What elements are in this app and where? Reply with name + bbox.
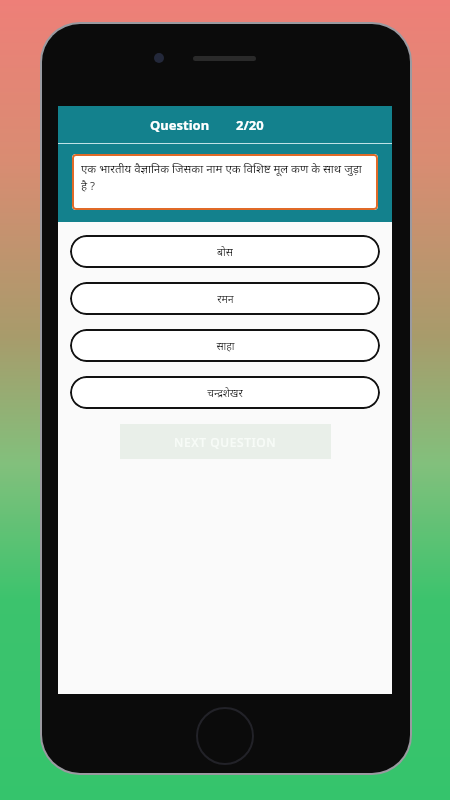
staticText: Question bbox=[150, 116, 210, 134]
staticText: 2/20 bbox=[236, 116, 264, 134]
button[interactable]: साहा bbox=[70, 329, 380, 362]
staticText: चन्द्रशेखर bbox=[207, 386, 243, 400]
button[interactable]: बोस bbox=[70, 235, 380, 268]
staticText: एक भारतीय वैज्ञानिक जिसका नाम एक विशिष्ट… bbox=[81, 161, 369, 193]
staticText: साहा bbox=[216, 339, 235, 353]
button[interactable]: चन्द्रशेखर bbox=[70, 376, 380, 409]
staticText: बोस bbox=[217, 245, 233, 259]
staticText: NEXT QUESTION bbox=[174, 434, 277, 450]
button[interactable]: रमन bbox=[70, 282, 380, 315]
staticText: रमन bbox=[217, 292, 234, 306]
